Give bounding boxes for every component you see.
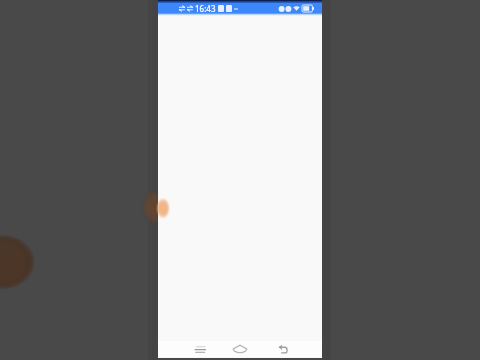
staticText: 16:43 bbox=[195, 3, 216, 14]
button[interactable]: Back bbox=[272, 338, 294, 360]
button[interactable]: Home bbox=[229, 338, 251, 360]
button[interactable]: Recent apps bbox=[189, 338, 211, 360]
